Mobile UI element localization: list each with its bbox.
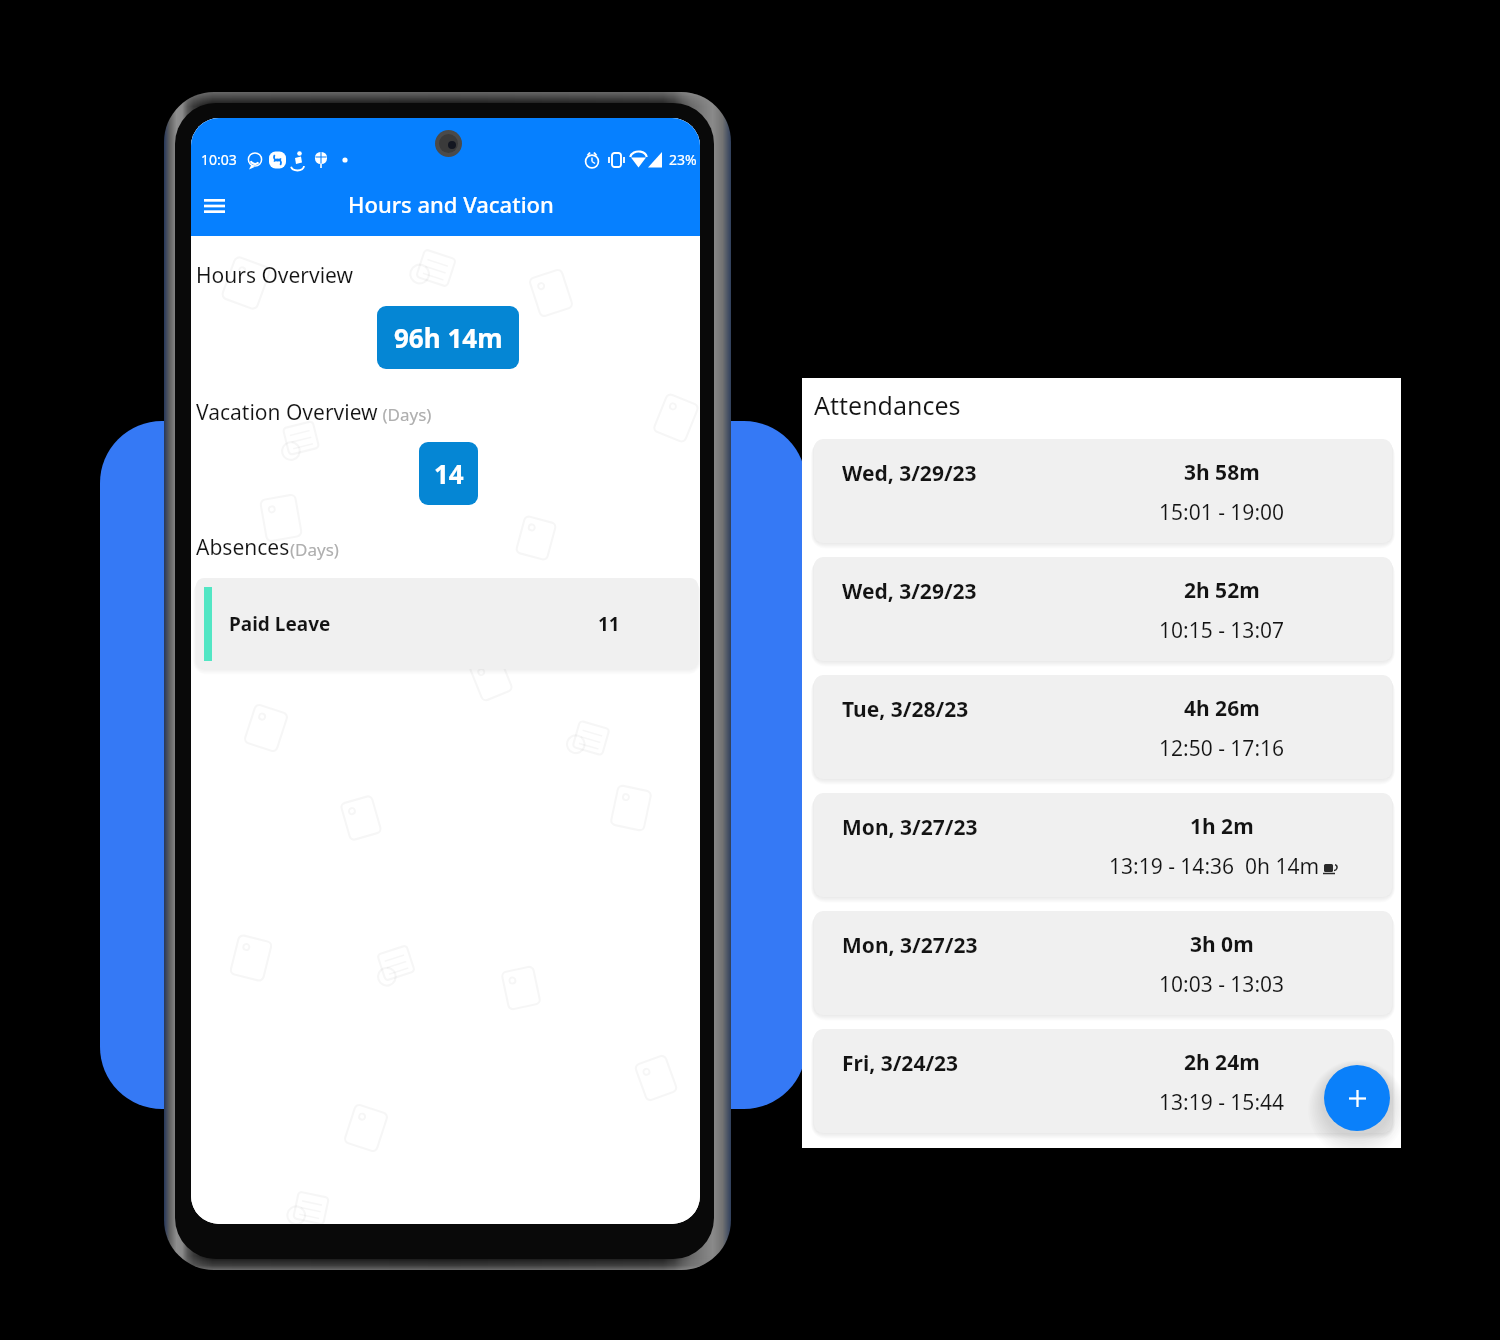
staticText: 96h 14m xyxy=(394,320,503,355)
staticText: Hours and Vacation xyxy=(348,189,554,219)
staticText: 13:19 - 14:36 0h 14m xyxy=(1109,852,1320,881)
staticText: 2h 24m xyxy=(1184,1048,1260,1077)
staticText: 13:19 - 15:44 xyxy=(1159,1088,1285,1117)
staticText: Hours Overview xyxy=(196,261,354,290)
staticText: Fri, 3/24/23 xyxy=(842,1049,959,1078)
staticText: 11 xyxy=(598,611,620,637)
staticText: Attendances xyxy=(814,388,961,422)
button[interactable]: Open navigation menu xyxy=(191,183,237,229)
staticText: Wed, 3/29/23 xyxy=(842,459,977,488)
staticText: Paid Leave xyxy=(229,611,331,637)
staticText: Tue, 3/28/23 xyxy=(842,695,969,724)
staticText: 3h 0m xyxy=(1190,930,1254,959)
staticText: 14 xyxy=(434,456,464,491)
button[interactable]: Wed, 3/29/23 xyxy=(814,557,1392,661)
button[interactable]: 14 xyxy=(419,442,478,505)
button[interactable]: 96h 14m xyxy=(377,306,519,369)
staticText: 15:01 - 19:00 xyxy=(1159,498,1285,527)
button[interactable]: Tue, 3/28/23 xyxy=(814,675,1392,779)
staticText: 10:03 - 13:03 xyxy=(1159,970,1285,999)
staticText: Wed, 3/29/23 xyxy=(842,577,977,606)
button[interactable]: Mon, 3/27/23 xyxy=(814,793,1392,897)
staticText: (Days) xyxy=(378,403,432,426)
staticText: Vacation Overview xyxy=(196,398,378,427)
staticText: Mon, 3/27/23 xyxy=(842,813,978,842)
staticText: 23% xyxy=(669,150,697,169)
staticText: 10:15 - 13:07 xyxy=(1159,616,1285,645)
staticText: (Days) xyxy=(290,538,339,561)
staticText: 2h 52m xyxy=(1184,576,1260,605)
staticText: 3h 58m xyxy=(1184,458,1260,487)
button[interactable]: Fri, 3/24/23 xyxy=(814,1029,1392,1133)
button[interactable]: Add attendance xyxy=(1324,1065,1390,1131)
staticText: 12:50 - 17:16 xyxy=(1159,734,1285,763)
staticText: Absences xyxy=(196,533,290,562)
staticText: Mon, 3/27/23 xyxy=(842,931,978,960)
staticText: 1h 2m xyxy=(1190,812,1254,841)
button[interactable]: Mon, 3/27/23 xyxy=(814,911,1392,1015)
button[interactable]: Wed, 3/29/23 xyxy=(814,439,1392,543)
staticText: 10:03 xyxy=(201,150,237,169)
button[interactable]: Paid Leave xyxy=(196,578,698,669)
staticText: 4h 26m xyxy=(1184,694,1260,723)
